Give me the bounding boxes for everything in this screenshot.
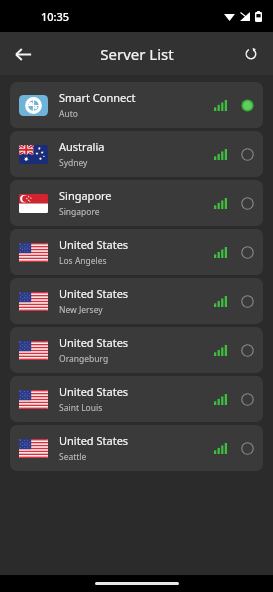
button[interactable]: Singapore: [10, 180, 263, 226]
staticText: United States: [59, 384, 129, 399]
button[interactable]: United States: [10, 229, 263, 275]
staticText: Smart Connect: [59, 90, 136, 105]
button[interactable]: United States: [10, 278, 263, 324]
staticText: Seattle: [59, 451, 87, 463]
staticText: United States: [59, 237, 129, 252]
staticText: United States: [59, 335, 129, 350]
staticText: Auto: [59, 108, 78, 120]
staticText: Singapore: [59, 188, 112, 203]
staticText: United States: [59, 286, 129, 301]
staticText: Orangeburg: [59, 353, 109, 365]
staticText: Australia: [59, 139, 105, 154]
button[interactable]: Smart Connect: [10, 82, 263, 128]
staticText: Sydney: [59, 157, 88, 169]
button[interactable]: United States: [10, 425, 263, 471]
button[interactable]: United States: [10, 327, 263, 373]
staticText: United States: [59, 433, 129, 448]
staticText: Singapore: [59, 206, 100, 218]
staticText: 10:35: [41, 9, 70, 24]
staticText: Server List: [100, 44, 174, 64]
button[interactable]: Refresh: [236, 39, 266, 69]
staticText: New Jersey: [59, 304, 103, 316]
button[interactable]: Back: [6, 37, 40, 71]
staticText: Los Angeles: [59, 255, 107, 267]
button[interactable]: United States: [10, 376, 263, 422]
staticText: Saint Louis: [59, 402, 103, 414]
button[interactable]: Australia: [10, 131, 263, 177]
